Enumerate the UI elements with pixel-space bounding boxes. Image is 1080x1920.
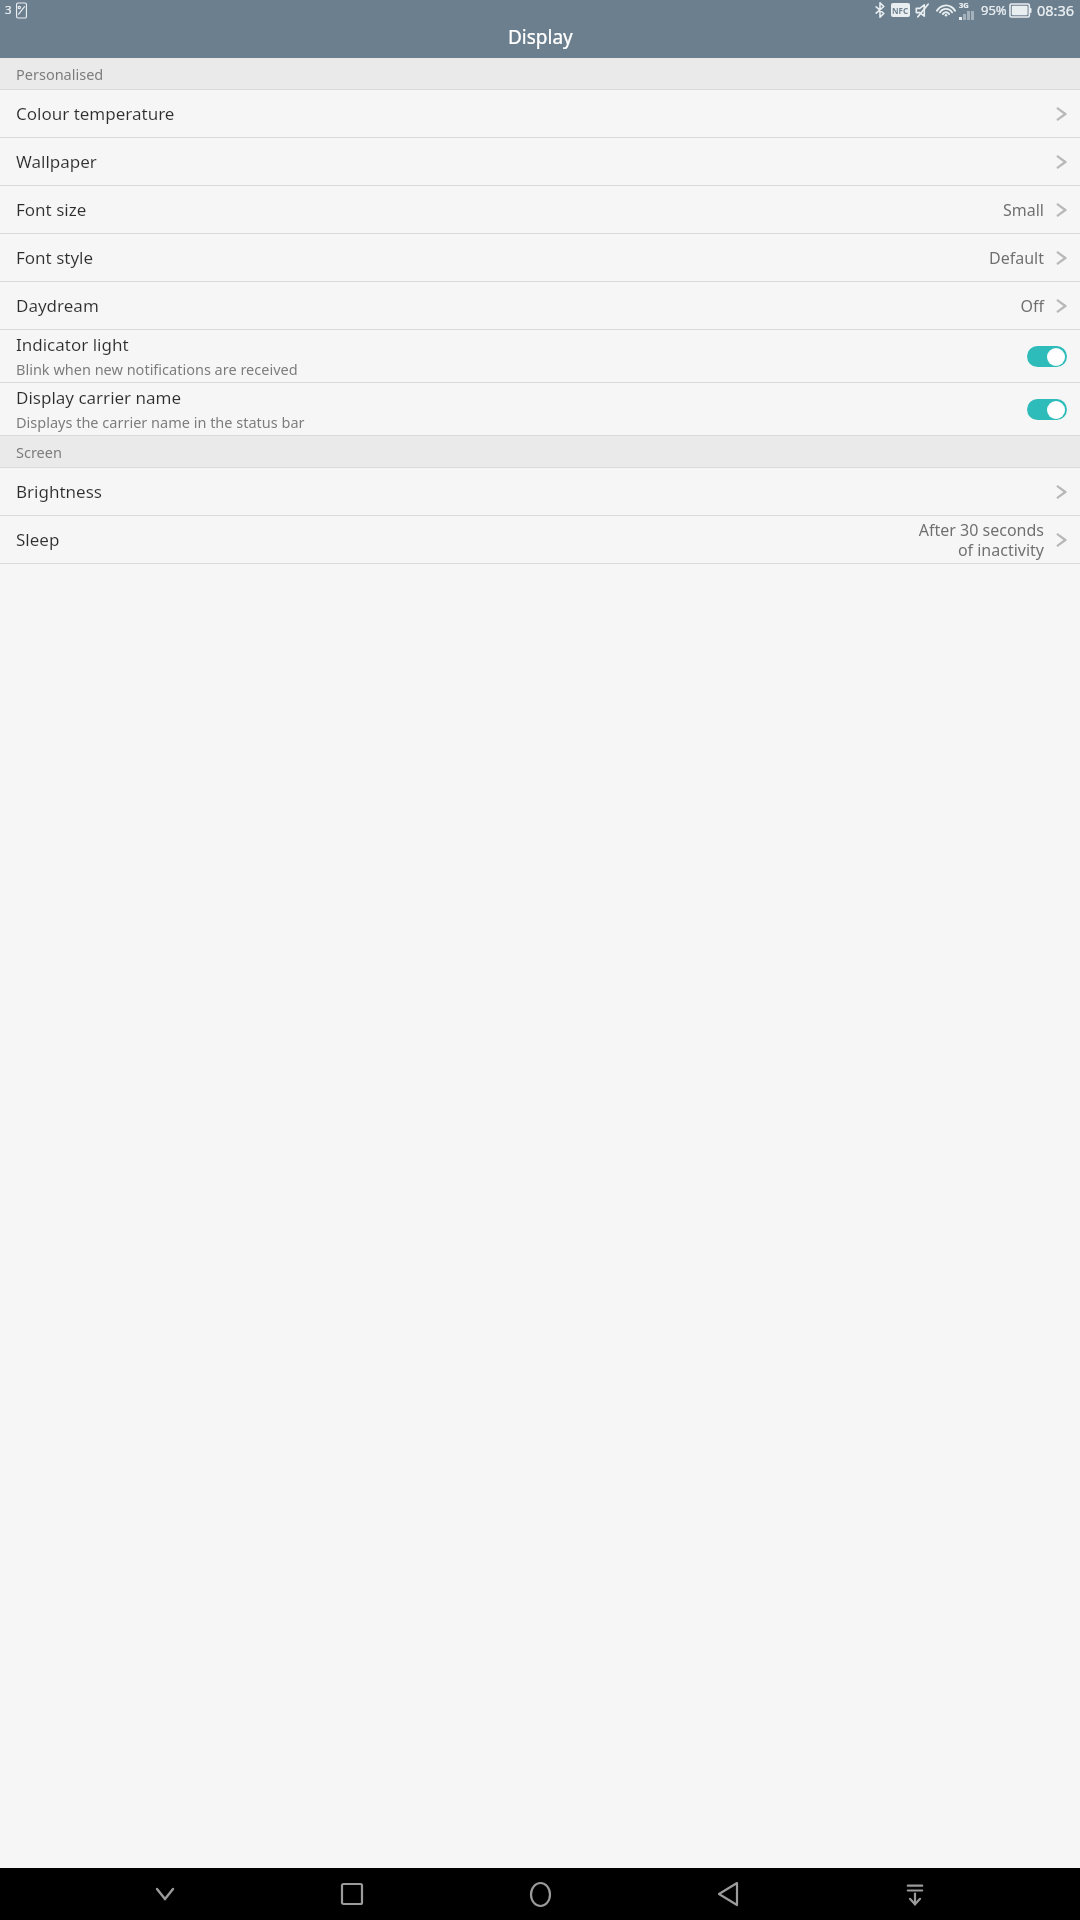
button[interactable]: Toggle Indicator light bbox=[1027, 346, 1067, 367]
staticText: Font size bbox=[16, 198, 87, 221]
button[interactable]: Home bbox=[517, 1871, 563, 1917]
staticText: Blink when new notifications are receive… bbox=[16, 359, 298, 379]
staticText: After 30 seconds of inactivity bbox=[918, 519, 1044, 560]
button[interactable]: Hide bbox=[142, 1871, 188, 1917]
staticText: Font style bbox=[16, 246, 94, 269]
staticText: Indicator light bbox=[16, 333, 129, 356]
staticText: Personalised bbox=[16, 64, 104, 84]
button[interactable]: Indicator light bbox=[0, 330, 1080, 383]
staticText: 3G bbox=[959, 0, 969, 10]
staticText: Brightness bbox=[16, 480, 102, 503]
button[interactable]: Daydream bbox=[0, 282, 1080, 330]
button[interactable]: Font style bbox=[0, 234, 1080, 282]
staticText: Display carrier name bbox=[16, 386, 182, 409]
button[interactable]: Brightness bbox=[0, 468, 1080, 516]
staticText: Screen bbox=[16, 442, 62, 462]
button[interactable]: Font size bbox=[0, 186, 1080, 234]
staticText: 3 bbox=[5, 2, 12, 18]
button[interactable]: Toggle Display carrier name bbox=[1027, 399, 1067, 420]
staticText: 95% bbox=[981, 1, 1007, 19]
staticText: Default bbox=[989, 247, 1044, 269]
button[interactable]: Colour temperature bbox=[0, 90, 1080, 138]
button[interactable]: Wallpaper bbox=[0, 138, 1080, 186]
staticText: Display bbox=[508, 24, 573, 50]
button[interactable]: Sleep bbox=[0, 516, 1080, 564]
button[interactable]: Display carrier name bbox=[0, 383, 1080, 436]
staticText: Displays the carrier name in the status … bbox=[16, 412, 305, 432]
button[interactable]: Recents bbox=[329, 1871, 375, 1917]
staticText: Sleep bbox=[16, 528, 60, 551]
staticText: NFC bbox=[892, 5, 909, 16]
staticText: Daydream bbox=[16, 294, 99, 317]
staticText: Off bbox=[1020, 295, 1044, 317]
button[interactable]: Pull down notifications bbox=[892, 1871, 938, 1917]
button[interactable]: Back bbox=[705, 1871, 751, 1917]
staticText: 08:36 bbox=[1037, 0, 1075, 20]
staticText: Small bbox=[1003, 199, 1044, 221]
staticText: Wallpaper bbox=[16, 150, 97, 173]
staticText: Colour temperature bbox=[16, 102, 175, 125]
